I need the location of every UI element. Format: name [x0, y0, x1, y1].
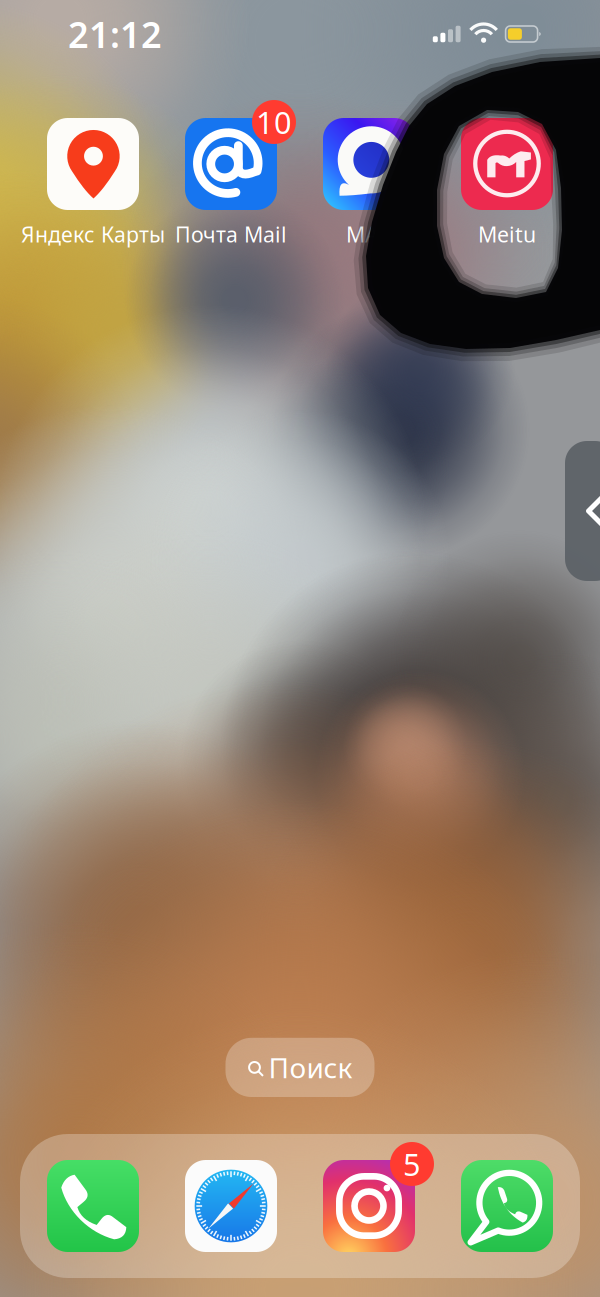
button[interactable]: 10 — [162, 118, 300, 248]
button[interactable]: Яндекс Карты — [24, 118, 162, 248]
staticText: Яндекс Карты — [21, 220, 165, 248]
button[interactable]: Safari — [185, 1160, 277, 1252]
staticText: 10 — [256, 102, 292, 142]
button[interactable]: Phone — [47, 1160, 139, 1252]
staticText: Почта Mail — [175, 220, 287, 248]
button[interactable]: Back to previous app — [565, 441, 600, 581]
staticText: Meitu — [478, 220, 536, 248]
button[interactable]: Instagram, 5 notifications — [323, 1160, 415, 1252]
staticText: 5 — [403, 1144, 421, 1184]
button[interactable]: MAX — [300, 118, 438, 248]
button[interactable]: Meitu — [438, 118, 576, 248]
staticText: MAX — [346, 220, 392, 248]
staticText: 21:12 — [68, 10, 162, 58]
button[interactable]: Поиск — [225, 1038, 374, 1097]
button[interactable]: WhatsApp — [461, 1160, 553, 1252]
staticText: Поиск — [268, 1049, 352, 1086]
